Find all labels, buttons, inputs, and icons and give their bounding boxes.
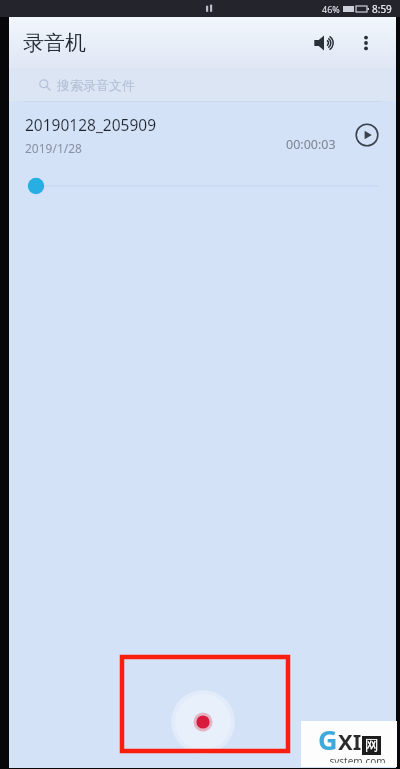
button[interactable]: More options: [348, 25, 384, 61]
button[interactable]: Speaker: [304, 23, 344, 63]
button[interactable]: 20190128_205909: [9, 102, 396, 168]
staticText: 00:00:03: [286, 136, 336, 153]
staticText: 46%: [322, 3, 340, 15]
button[interactable]: Record: [171, 690, 235, 754]
button[interactable]: 搜索录音文件: [9, 68, 396, 101]
staticText: 网: [365, 737, 379, 755]
staticText: 2019/1/28: [25, 140, 82, 156]
staticText: 8:59: [372, 2, 392, 16]
staticText: 录音机: [23, 30, 86, 56]
button[interactable]: [9, 168, 396, 204]
staticText: XI: [338, 726, 362, 756]
staticText: 搜索录音文件: [57, 77, 135, 93]
staticText: system.com: [329, 754, 386, 763]
button[interactable]: Play: [350, 118, 384, 152]
staticText: G: [318, 721, 338, 758]
staticText: 20190128_205909: [25, 114, 157, 135]
